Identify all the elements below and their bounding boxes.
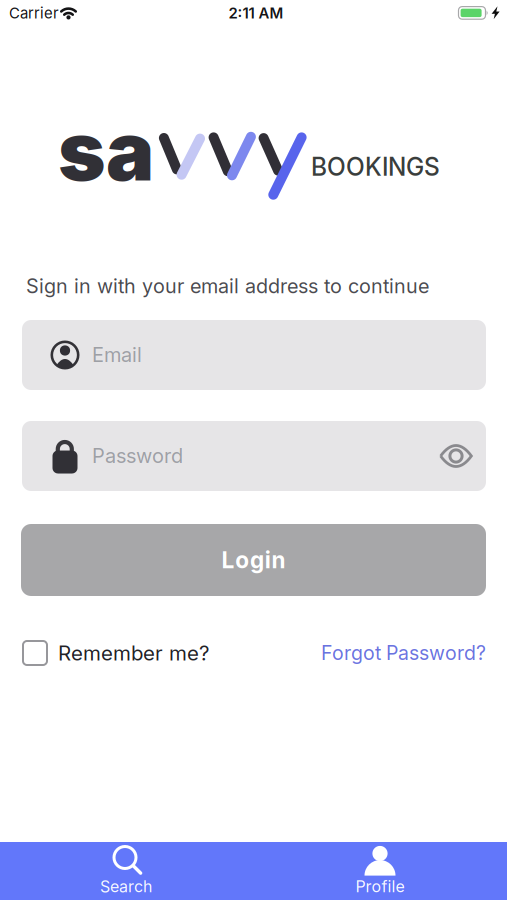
staticText: Sign in with your email address to conti… [26,274,429,298]
button[interactable]: Forgot Password? [321,641,486,665]
button[interactable]: Email [22,320,486,390]
staticText: Carrier [9,4,59,22]
staticText: BOOKINGS [311,152,440,182]
button[interactable]: Password [22,421,486,491]
button[interactable]: Remember me? [22,640,210,666]
button[interactable]: Profile [253,842,507,900]
staticText: Password [92,443,183,468]
staticText: 2:11 AM [228,4,283,22]
staticText: Profile [355,877,404,896]
staticText: Forgot Password? [321,641,486,665]
staticText: sa [58,102,154,200]
button[interactable]: Search [0,842,253,900]
staticText: Login [221,546,286,574]
button[interactable] [435,441,477,471]
staticText: Search [100,877,152,896]
staticText: Email [92,342,142,367]
staticText: Remember me? [58,641,210,665]
button[interactable]: Login [21,524,486,596]
